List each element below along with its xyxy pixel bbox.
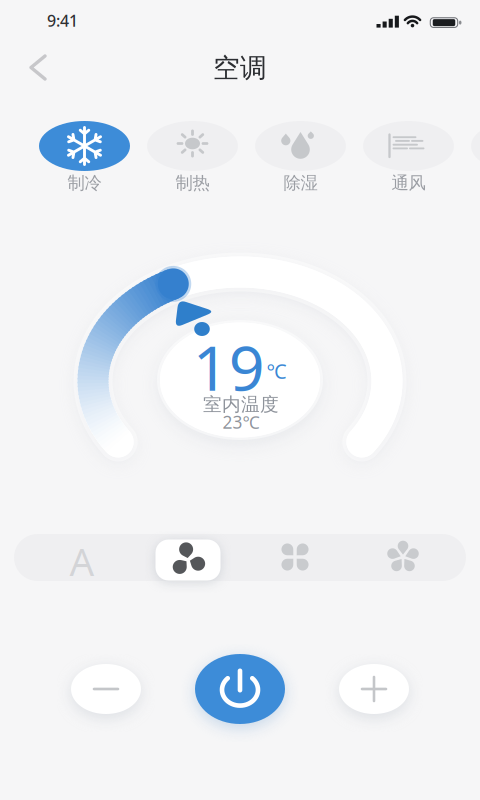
- staticText: 23℃: [222, 410, 259, 433]
- button[interactable]: 制热: [147, 121, 238, 195]
- staticText: 19: [193, 325, 265, 408]
- staticText: ℃: [266, 358, 286, 384]
- button[interactable]: 低速风: [155, 539, 220, 580]
- button[interactable]: 返回: [16, 45, 60, 89]
- button[interactable]: 通风: [363, 121, 454, 195]
- staticText: 室内温度: [203, 393, 279, 416]
- staticText: 制冷: [67, 172, 101, 194]
- button[interactable]: 降低温度: [71, 664, 141, 714]
- staticText: A: [69, 535, 94, 587]
- button[interactable]: 制冷: [39, 121, 130, 195]
- staticText: 通风: [391, 172, 425, 194]
- button[interactable]: 电源: [195, 654, 285, 724]
- staticText: 制热: [175, 172, 209, 194]
- staticText: 空调: [213, 52, 267, 84]
- button[interactable]: 自动风速: [49, 539, 115, 583]
- button[interactable]: 升高温度: [339, 664, 409, 714]
- staticText: 9:41: [47, 10, 78, 31]
- button[interactable]: 中速风: [262, 535, 328, 579]
- button[interactable]: 除湿: [255, 121, 346, 195]
- button[interactable]: 高速风: [370, 535, 436, 579]
- staticText: 除湿: [283, 172, 317, 194]
